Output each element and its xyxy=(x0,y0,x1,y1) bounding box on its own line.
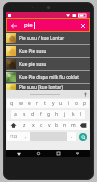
staticText: r xyxy=(36,100,39,107)
button[interactable]: h xyxy=(53,110,61,119)
button[interactable]: t xyxy=(41,99,49,108)
button[interactable]: k xyxy=(69,110,77,119)
button[interactable]: d xyxy=(29,110,37,119)
button[interactable]: a xyxy=(11,110,20,119)
staticText: m xyxy=(71,122,76,129)
staticText: e xyxy=(28,100,31,107)
button[interactable]: Kue Pie susu xyxy=(6,45,90,57)
button[interactable]: z xyxy=(20,121,29,130)
staticText: f xyxy=(40,111,42,118)
button[interactable]: Kue Pie dispa milk flu coklat xyxy=(6,71,90,83)
staticText: z xyxy=(23,122,26,129)
button[interactable]: Shift xyxy=(7,121,20,130)
button[interactable]: Recent apps xyxy=(51,150,65,157)
button[interactable]: Pie susu / kue Lontar xyxy=(6,32,90,44)
button[interactable]: Home xyxy=(31,150,45,157)
staticText: k xyxy=(72,111,75,118)
button[interactable]: j xyxy=(61,110,69,119)
button[interactable]: s xyxy=(20,110,29,119)
button[interactable]: m xyxy=(69,121,77,130)
button[interactable]: v xyxy=(45,121,53,130)
other: Voice input xyxy=(83,92,88,97)
button[interactable]: u xyxy=(57,99,65,108)
button[interactable]: p xyxy=(81,99,89,108)
button[interactable]: Hide keyboard xyxy=(70,150,84,157)
staticText: o xyxy=(75,100,79,107)
staticText: i xyxy=(68,100,70,107)
staticText: a xyxy=(14,111,17,118)
staticText: b xyxy=(55,122,59,129)
button[interactable]: w xyxy=(16,99,25,108)
staticText: s xyxy=(23,111,26,118)
button[interactable]: e xyxy=(25,99,33,108)
staticText: Kue Pie dispa milk flu coklat xyxy=(19,74,79,80)
staticText: Kue Pie susu xyxy=(19,48,47,54)
staticText: j xyxy=(64,111,66,118)
button[interactable]: Clear search xyxy=(78,21,87,30)
button[interactable]: b xyxy=(53,121,61,130)
button[interactable]: Kue pie susu xyxy=(6,58,90,70)
button[interactable]: c xyxy=(37,121,45,130)
staticText: Kue pie susu xyxy=(19,61,47,67)
staticText: v xyxy=(48,122,51,129)
staticText: h xyxy=(55,111,59,118)
button[interactable]: , xyxy=(21,132,30,141)
button[interactable]: . xyxy=(67,132,76,141)
button[interactable]: Backspace xyxy=(77,121,89,130)
button[interactable]: x xyxy=(29,121,37,130)
staticText: x xyxy=(32,122,35,129)
staticText: l xyxy=(80,111,82,118)
staticText: q xyxy=(10,100,14,107)
staticText: g xyxy=(47,111,51,118)
button[interactable]: Back xyxy=(9,21,18,30)
button[interactable]: n xyxy=(61,121,69,130)
button[interactable]: y xyxy=(49,99,57,108)
staticText: Pie susu / kue Lontar xyxy=(19,35,65,41)
button[interactable]: Pie susu (kue lontar) xyxy=(6,84,90,90)
staticText: Pie susu (kue lontar) xyxy=(19,84,63,90)
button[interactable]: f xyxy=(37,110,45,119)
staticText: p xyxy=(83,100,87,107)
button[interactable]: r xyxy=(33,99,41,108)
staticText: pie xyxy=(24,21,33,29)
staticText: y xyxy=(52,100,55,107)
button[interactable]: i xyxy=(65,99,73,108)
button[interactable]: l xyxy=(77,110,85,119)
staticText: . xyxy=(71,133,73,140)
staticText: t xyxy=(44,100,46,107)
staticText: ?123 xyxy=(10,134,18,139)
button[interactable]: ?123 xyxy=(7,132,21,141)
staticText: n xyxy=(63,122,67,129)
button[interactable]: o xyxy=(73,99,81,108)
button[interactable]: g xyxy=(45,110,53,119)
button[interactable]: q xyxy=(7,99,16,108)
staticText: d xyxy=(31,111,35,118)
button[interactable]: Search xyxy=(79,133,87,141)
button[interactable]: Back xyxy=(12,150,26,157)
staticText: c xyxy=(40,122,43,129)
staticText: u xyxy=(59,100,63,107)
button[interactable]: Back xyxy=(6,18,90,32)
staticText: w xyxy=(19,100,23,107)
staticText: , xyxy=(25,133,27,140)
